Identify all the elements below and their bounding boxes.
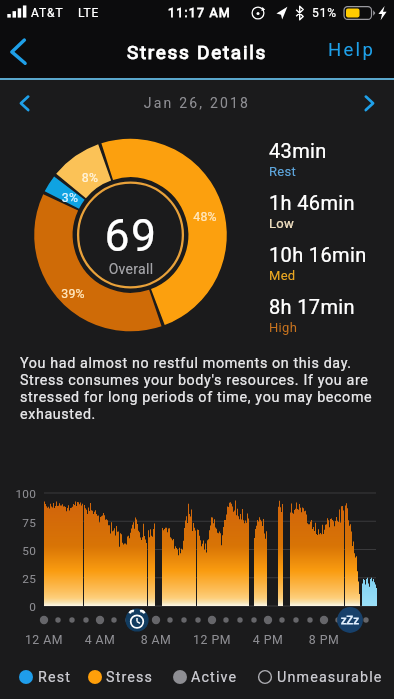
staticText: 0 [0,600,36,614]
staticText: Active [191,669,238,686]
staticText: 100 [0,487,36,501]
staticText: 75 [0,516,36,530]
staticText: Stress Details [0,41,394,63]
staticText: Help [328,39,376,61]
button[interactable]: Rest [19,665,72,689]
staticText: 43min [269,139,327,162]
staticText: 8% [70,171,110,185]
staticText: Rest [38,669,72,686]
staticText: 3% [50,191,90,205]
staticText: Low [269,216,295,231]
staticText: zZz [335,614,365,627]
staticText: 10h 16min [269,243,367,266]
staticText: 51% [312,6,337,20]
staticText: AT&T [31,6,64,20]
staticText: Rest [269,164,297,179]
staticText: 50 [0,544,36,558]
staticText: Stress consumes your body's resources. I… [20,372,369,389]
staticText: 11:17 AM [168,5,231,20]
staticText: 12 AM [14,633,74,647]
staticText: 39% [50,287,96,301]
staticText: 1h 46min [269,191,355,214]
staticText: Unmeasurable [277,669,383,686]
staticText: You had almost no restful moments on thi… [20,355,352,372]
button[interactable]: Unmeasurable [258,665,383,689]
staticText: 4 PM [238,633,298,647]
staticText: 8h 17min [269,295,355,318]
staticText: exhausted. [20,406,96,423]
staticText: Stress [106,669,154,686]
button[interactable]: Stress [88,665,154,689]
staticText: 12 PM [182,633,242,647]
staticText: 25 [0,572,36,586]
staticText: 8 PM [294,633,354,647]
button[interactable]: Jan 26, 2018 [0,95,394,111]
button[interactable]: Help [322,31,382,69]
staticText: 48% [182,210,228,224]
staticText: 69 [61,210,201,262]
staticText: Med [269,268,296,283]
button[interactable]: Back [2,29,48,75]
staticText: Overall [61,261,201,277]
staticText: LTE [78,6,99,20]
button[interactable]: Active [173,665,238,689]
staticText: 4 AM [70,633,130,647]
button[interactable]: Previous day [6,84,46,124]
staticText: 8 AM [126,633,186,647]
staticText: High [269,320,298,335]
staticText: stressed for long periods of time, you m… [20,389,373,406]
button[interactable]: Next day [348,84,388,124]
